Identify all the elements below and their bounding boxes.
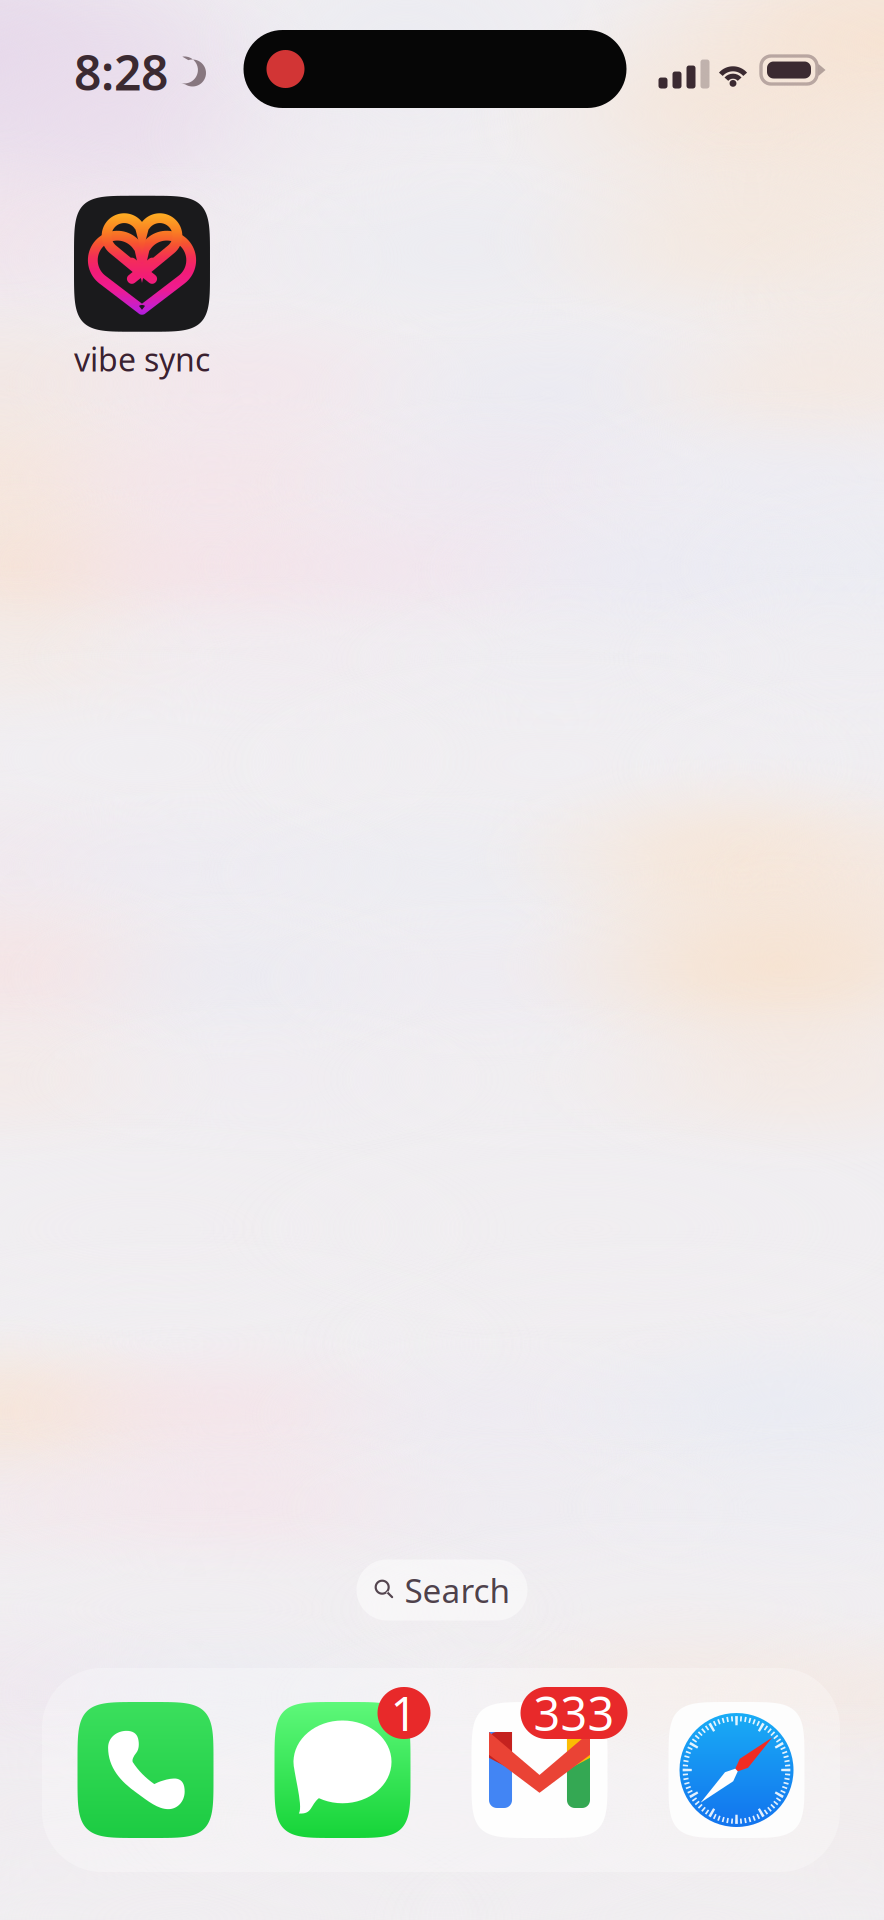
button[interactable]: Messages [274,1702,410,1838]
button[interactable]: Phone [77,1702,213,1838]
staticText: vibe sync [74,338,210,380]
button[interactable]: vibe sync [74,196,210,380]
staticText: Search [404,1568,510,1612]
button[interactable]: Safari [668,1702,804,1838]
button[interactable]: Gmail [471,1702,607,1838]
staticText: 1 [390,1682,417,1744]
staticText: 333 [533,1682,614,1744]
button[interactable]: Search [356,1559,527,1620]
staticText: 8:28 [74,40,168,104]
